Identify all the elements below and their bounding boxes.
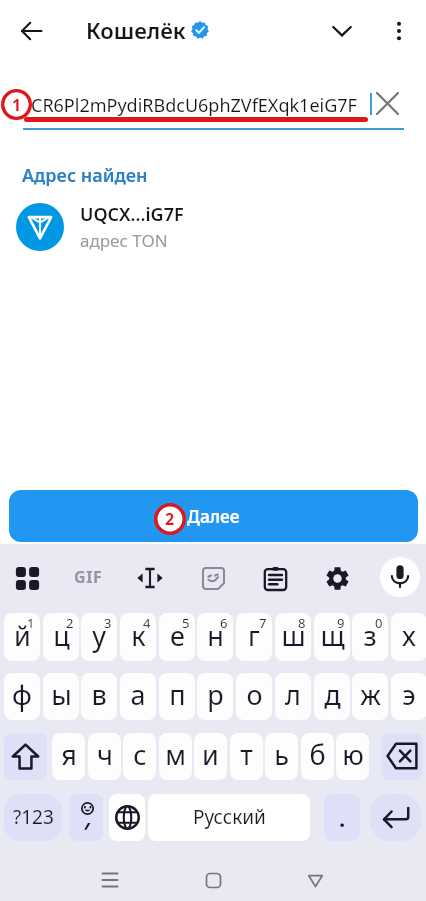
button[interactable]: л xyxy=(275,673,311,720)
button[interactable]: Stickers xyxy=(190,555,236,601)
button[interactable]: Backspace xyxy=(381,733,423,780)
button[interactable]: Clipboard xyxy=(252,555,298,601)
staticText: ш xyxy=(281,617,306,654)
button[interactable]: Recent apps xyxy=(88,858,132,901)
staticText: у xyxy=(92,617,106,654)
button[interactable]: х xyxy=(391,613,426,661)
staticText: б xyxy=(309,736,326,773)
staticText: т xyxy=(240,736,253,773)
staticText: д xyxy=(324,676,341,713)
staticText: GIF xyxy=(74,566,103,588)
staticText: в xyxy=(91,676,107,713)
button[interactable]: о xyxy=(236,673,272,720)
button[interactable]: Back xyxy=(293,858,337,901)
staticText: 4 xyxy=(143,614,151,632)
button[interactable]: Clear xyxy=(366,82,409,125)
staticText: н xyxy=(207,617,224,654)
staticText: 9 xyxy=(337,614,345,632)
button[interactable]: я xyxy=(52,733,85,780)
button[interactable]: ж xyxy=(352,673,388,720)
button[interactable]: ы xyxy=(43,673,79,720)
button[interactable]: з xyxy=(352,613,388,661)
button[interactable]: Enter xyxy=(370,794,421,841)
staticText: е xyxy=(170,617,185,654)
button[interactable]: . xyxy=(324,794,360,841)
button[interactable]: Emoji xyxy=(69,794,103,841)
staticText: 2 xyxy=(165,508,175,530)
staticText: ь xyxy=(274,736,289,773)
staticText: х xyxy=(402,617,416,654)
button[interactable]: Shift xyxy=(4,733,47,780)
staticText: Русский xyxy=(193,804,266,830)
staticText: й xyxy=(14,617,31,654)
button[interactable]: More options xyxy=(378,10,420,52)
button[interactable]: ?123 xyxy=(4,794,62,841)
button[interactable]: Далее xyxy=(9,490,418,542)
button[interactable]: ш xyxy=(275,613,311,661)
staticText: р xyxy=(207,676,224,713)
button[interactable]: Back xyxy=(8,7,56,55)
button[interactable]: Expand xyxy=(321,10,363,52)
button[interactable]: й xyxy=(4,613,40,661)
staticText: ф xyxy=(12,676,32,713)
button[interactable]: ц xyxy=(43,613,79,661)
button[interactable]: б xyxy=(301,733,334,780)
staticText: CR6Pl2mPydiRBdcU6phZVfEXqk1eiG7F xyxy=(31,93,357,118)
staticText: 3 xyxy=(104,614,112,632)
staticText: 2 xyxy=(66,614,74,632)
button[interactable]: т xyxy=(230,733,263,780)
button[interactable]: Home xyxy=(191,858,235,901)
staticText: 5 xyxy=(182,614,190,632)
button[interactable]: ч xyxy=(88,733,121,780)
staticText: 0 xyxy=(375,614,383,632)
button[interactable]: д xyxy=(314,673,350,720)
staticText: м xyxy=(165,736,186,773)
button[interactable]: п xyxy=(159,673,195,720)
button[interactable]: в xyxy=(81,673,117,720)
staticText: ч xyxy=(97,736,113,773)
staticText: 1 xyxy=(27,614,35,632)
staticText: к xyxy=(131,617,146,654)
button[interactable]: е xyxy=(159,613,195,661)
button[interactable]: ф xyxy=(4,673,40,720)
button[interactable]: GIF xyxy=(65,555,111,601)
button[interactable]: Change keyboard language xyxy=(109,794,145,841)
staticText: ю xyxy=(342,736,364,773)
staticText: с xyxy=(133,736,147,773)
staticText: Далее xyxy=(187,505,240,528)
button[interactable]: Русский xyxy=(148,794,310,841)
button[interactable]: а xyxy=(120,673,156,720)
button[interactable]: м xyxy=(159,733,192,780)
button[interactable]: и xyxy=(194,733,227,780)
staticText: ?123 xyxy=(13,804,54,830)
staticText: щ xyxy=(320,617,345,654)
button[interactable]: н xyxy=(197,613,233,661)
staticText: 7 xyxy=(259,614,267,632)
staticText: ж xyxy=(360,676,381,713)
staticText: г xyxy=(248,617,260,654)
button[interactable]: ю xyxy=(336,733,369,780)
button[interactable]: Move cursor xyxy=(127,555,173,601)
staticText: 8 xyxy=(298,614,306,632)
staticText: з xyxy=(363,617,377,654)
staticText: а xyxy=(130,676,146,713)
button[interactable]: э xyxy=(391,673,426,720)
staticText: ы xyxy=(51,676,72,713)
button[interactable]: г xyxy=(236,613,272,661)
button[interactable]: с xyxy=(123,733,156,780)
button[interactable]: Voice input xyxy=(380,557,420,597)
button[interactable]: Apps xyxy=(4,555,50,601)
button[interactable]: ь xyxy=(265,733,298,780)
button[interactable]: р xyxy=(197,673,233,720)
button[interactable]: щ xyxy=(314,613,350,661)
staticText: и xyxy=(202,736,219,773)
staticText: UQCX...iG7F xyxy=(80,202,184,227)
staticText: . xyxy=(339,803,346,833)
button[interactable]: UQCX...iG7F xyxy=(0,198,426,256)
button[interactable]: к xyxy=(120,613,156,661)
staticText: э xyxy=(402,676,416,713)
button[interactable]: у xyxy=(81,613,117,661)
staticText: Адрес найден xyxy=(22,163,148,188)
button[interactable]: Settings xyxy=(314,555,360,601)
staticText: 1 xyxy=(12,94,22,116)
